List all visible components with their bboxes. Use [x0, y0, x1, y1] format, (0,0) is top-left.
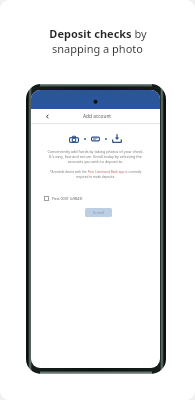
staticText: Enroll [93, 210, 104, 215]
other: Back [45, 114, 50, 119]
staticText: Deposit checks by [49, 26, 147, 41]
staticText: snapping a photo [52, 41, 143, 56]
button[interactable]: First 0001 (x9843) [44, 196, 160, 201]
staticText: Conveniently add funds by taking photos … [46, 149, 145, 164]
staticText: First 0001 (x9843) [52, 196, 83, 201]
staticText: *A mobile device with the First Command … [45, 170, 146, 179]
button[interactable]: Enroll [85, 208, 112, 217]
staticText: Add account [83, 113, 112, 120]
